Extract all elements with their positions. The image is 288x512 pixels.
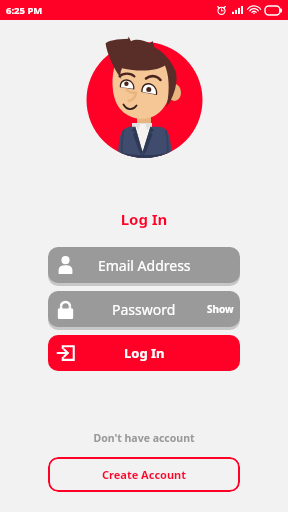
button[interactable]: Email Address — [48, 247, 240, 283]
button[interactable]: Password — [48, 291, 240, 327]
staticText: Password — [112, 300, 176, 319]
staticText: Log In — [124, 344, 165, 362]
staticText: Log In — [0, 209, 288, 229]
staticText: Email Address — [98, 256, 191, 275]
staticText: Create Account — [102, 467, 187, 482]
button[interactable]: Log In — [48, 335, 240, 371]
button[interactable]: Create Account — [48, 457, 240, 492]
staticText: Show — [207, 302, 234, 316]
staticText: Don't have account — [0, 431, 288, 445]
staticText: 6:25 PM — [6, 4, 43, 17]
